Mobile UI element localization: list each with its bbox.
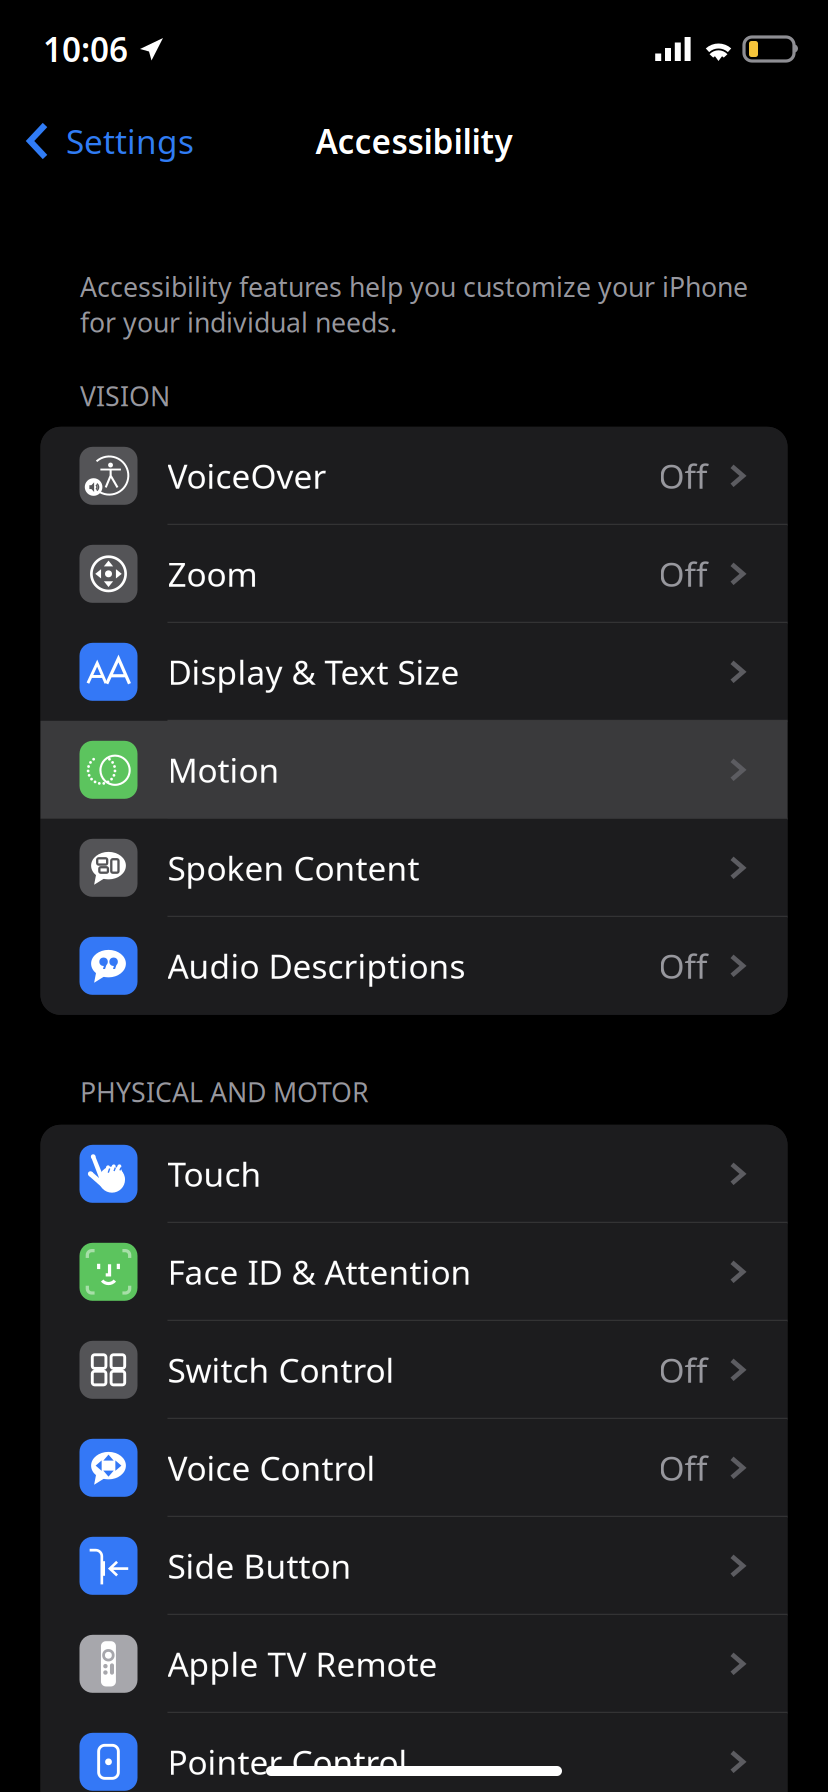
staticText: Off bbox=[658, 454, 707, 498]
button[interactable]: Pointer Control bbox=[40, 1713, 787, 1792]
button[interactable]: Audio Descriptions bbox=[40, 917, 787, 1015]
staticText: Off bbox=[658, 552, 707, 596]
button[interactable]: Side Button bbox=[40, 1517, 787, 1615]
staticText: Apple TV Remote bbox=[167, 1642, 437, 1686]
staticText: Zoom bbox=[167, 552, 257, 596]
staticText: Switch Control bbox=[167, 1348, 394, 1392]
staticText: Settings bbox=[66, 119, 194, 163]
staticText: Off bbox=[658, 1348, 707, 1392]
staticText: Pointer Control bbox=[167, 1740, 407, 1784]
button[interactable]: Settings bbox=[0, 103, 194, 179]
staticText: Off bbox=[658, 944, 707, 988]
staticText: Off bbox=[658, 1446, 707, 1490]
staticText: Display & Text Size bbox=[167, 650, 459, 694]
staticText: Touch bbox=[167, 1152, 261, 1196]
staticText: Side Button bbox=[167, 1544, 351, 1588]
staticText: VoiceOver bbox=[167, 454, 326, 498]
staticText: PHYSICAL AND MOTOR bbox=[80, 1074, 369, 1109]
staticText: Face ID & Attention bbox=[167, 1250, 471, 1294]
button[interactable]: Apple TV Remote bbox=[40, 1615, 787, 1713]
staticText: Motion bbox=[167, 748, 279, 792]
button[interactable]: VoiceOver bbox=[40, 427, 787, 525]
staticText: Accessibility bbox=[315, 119, 512, 163]
button[interactable]: Voice Control bbox=[40, 1419, 787, 1517]
staticText: Accessibility features help you customiz… bbox=[80, 269, 748, 340]
button[interactable]: Zoom bbox=[40, 525, 787, 623]
staticText: Spoken Content bbox=[167, 846, 419, 890]
button[interactable]: Switch Control bbox=[40, 1321, 787, 1419]
button[interactable]: Display & Text Size bbox=[40, 623, 787, 721]
staticText: VISION bbox=[80, 378, 170, 413]
button[interactable]: Motion bbox=[40, 721, 787, 819]
button[interactable]: Face ID & Attention bbox=[40, 1223, 787, 1321]
staticText: Audio Descriptions bbox=[167, 944, 465, 988]
button[interactable]: Touch bbox=[40, 1125, 787, 1223]
staticText: 10:06 bbox=[43, 27, 128, 71]
staticText: Voice Control bbox=[167, 1446, 375, 1490]
button[interactable]: Spoken Content bbox=[40, 819, 787, 917]
